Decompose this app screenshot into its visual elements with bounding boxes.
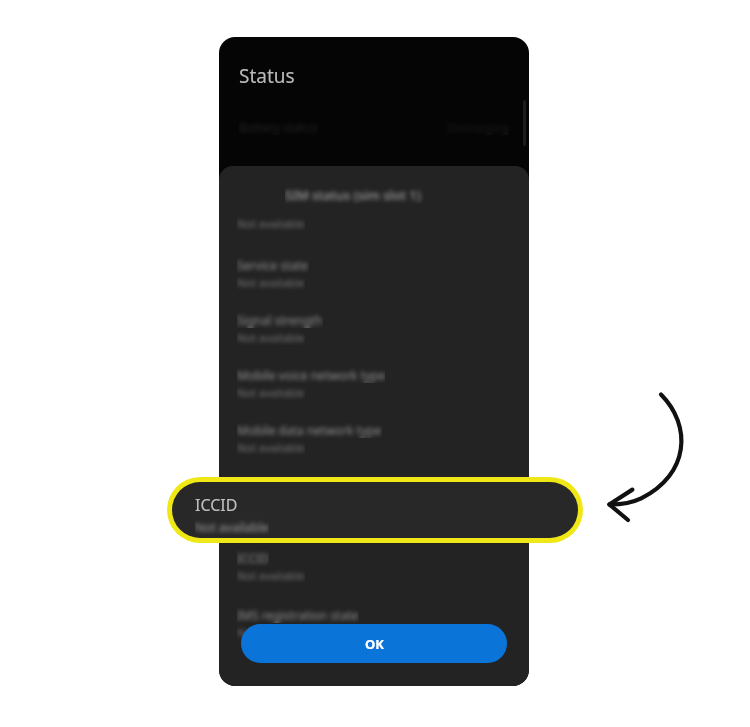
staticText: Status <box>239 63 295 89</box>
staticText: Not available <box>237 275 305 290</box>
staticText: Not available <box>237 330 305 345</box>
staticText: Mobile data network type <box>237 422 382 438</box>
staticText: Service state <box>237 257 309 273</box>
staticText: Mobile voice network type <box>237 367 385 383</box>
staticText: OK <box>365 635 384 653</box>
staticText: Not available <box>237 216 305 231</box>
staticText: Not available <box>237 440 305 455</box>
staticText: Signal strength <box>237 312 323 328</box>
button[interactable]: OK <box>241 624 507 663</box>
staticText: Roaming <box>237 477 288 493</box>
staticText: Battery status <box>239 119 318 135</box>
staticText: ICCID <box>237 550 269 566</box>
staticText: Not available <box>237 568 305 583</box>
button[interactable]: ICCID <box>172 482 578 538</box>
staticText: IMS registration state <box>237 607 359 623</box>
other: Pointer arrow to ICCID row <box>595 385 705 520</box>
staticText: ICCID <box>195 494 238 516</box>
staticText: Not available <box>237 385 305 400</box>
staticText: Not available <box>195 519 269 535</box>
staticText: SIM status (sim slot 1) <box>285 186 529 204</box>
staticText: Not available <box>237 625 305 640</box>
